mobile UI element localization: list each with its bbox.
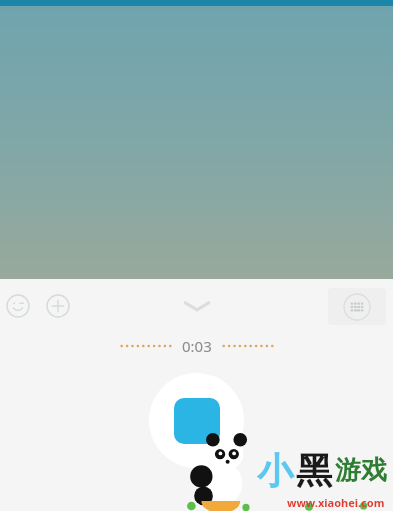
staticText: 游戏 xyxy=(335,454,387,487)
button[interactable]: Stop recording xyxy=(149,373,244,468)
button[interactable]: Emoji xyxy=(5,293,31,319)
button[interactable]: Keyboard xyxy=(328,288,386,325)
button[interactable]: Collapse panel xyxy=(172,291,222,321)
button[interactable]: Add attachment xyxy=(45,293,71,319)
staticText: www.xiaohei.com xyxy=(287,495,385,510)
staticText: 0:03 xyxy=(182,336,212,356)
staticText: 黑 xyxy=(296,448,332,493)
staticText: 小 xyxy=(257,448,293,493)
